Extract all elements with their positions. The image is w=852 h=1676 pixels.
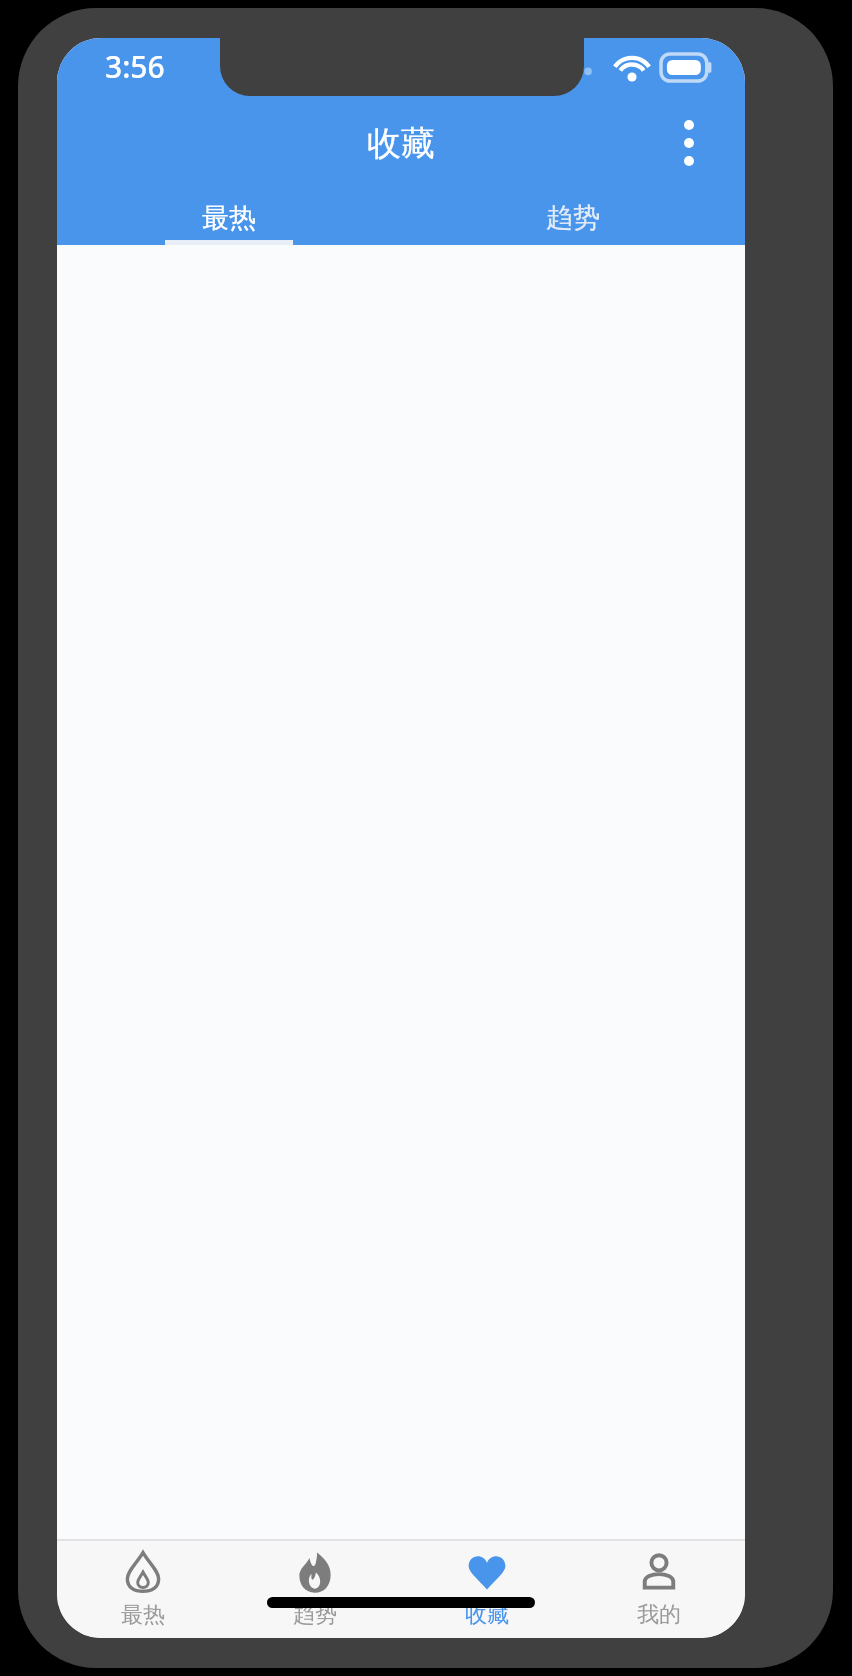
staticText: 最热 [202, 201, 256, 235]
staticText: 最热 [121, 1601, 165, 1629]
staticText: 收藏 [465, 1601, 509, 1629]
button[interactable]: 最热 [57, 1539, 229, 1638]
staticText: 我的 [637, 1601, 681, 1629]
button[interactable]: 收藏 [401, 1539, 573, 1638]
button[interactable]: 我的 [573, 1539, 745, 1638]
button[interactable]: 趋势 [229, 1539, 401, 1638]
button[interactable]: 趋势 [401, 191, 745, 245]
staticText: 趋势 [293, 1601, 337, 1629]
button[interactable]: 最热 [57, 191, 401, 245]
staticText: 3:56 [105, 46, 165, 87]
staticText: 趋势 [546, 201, 600, 235]
button[interactable]: More options [651, 105, 727, 181]
staticText: 收藏 [367, 122, 435, 165]
